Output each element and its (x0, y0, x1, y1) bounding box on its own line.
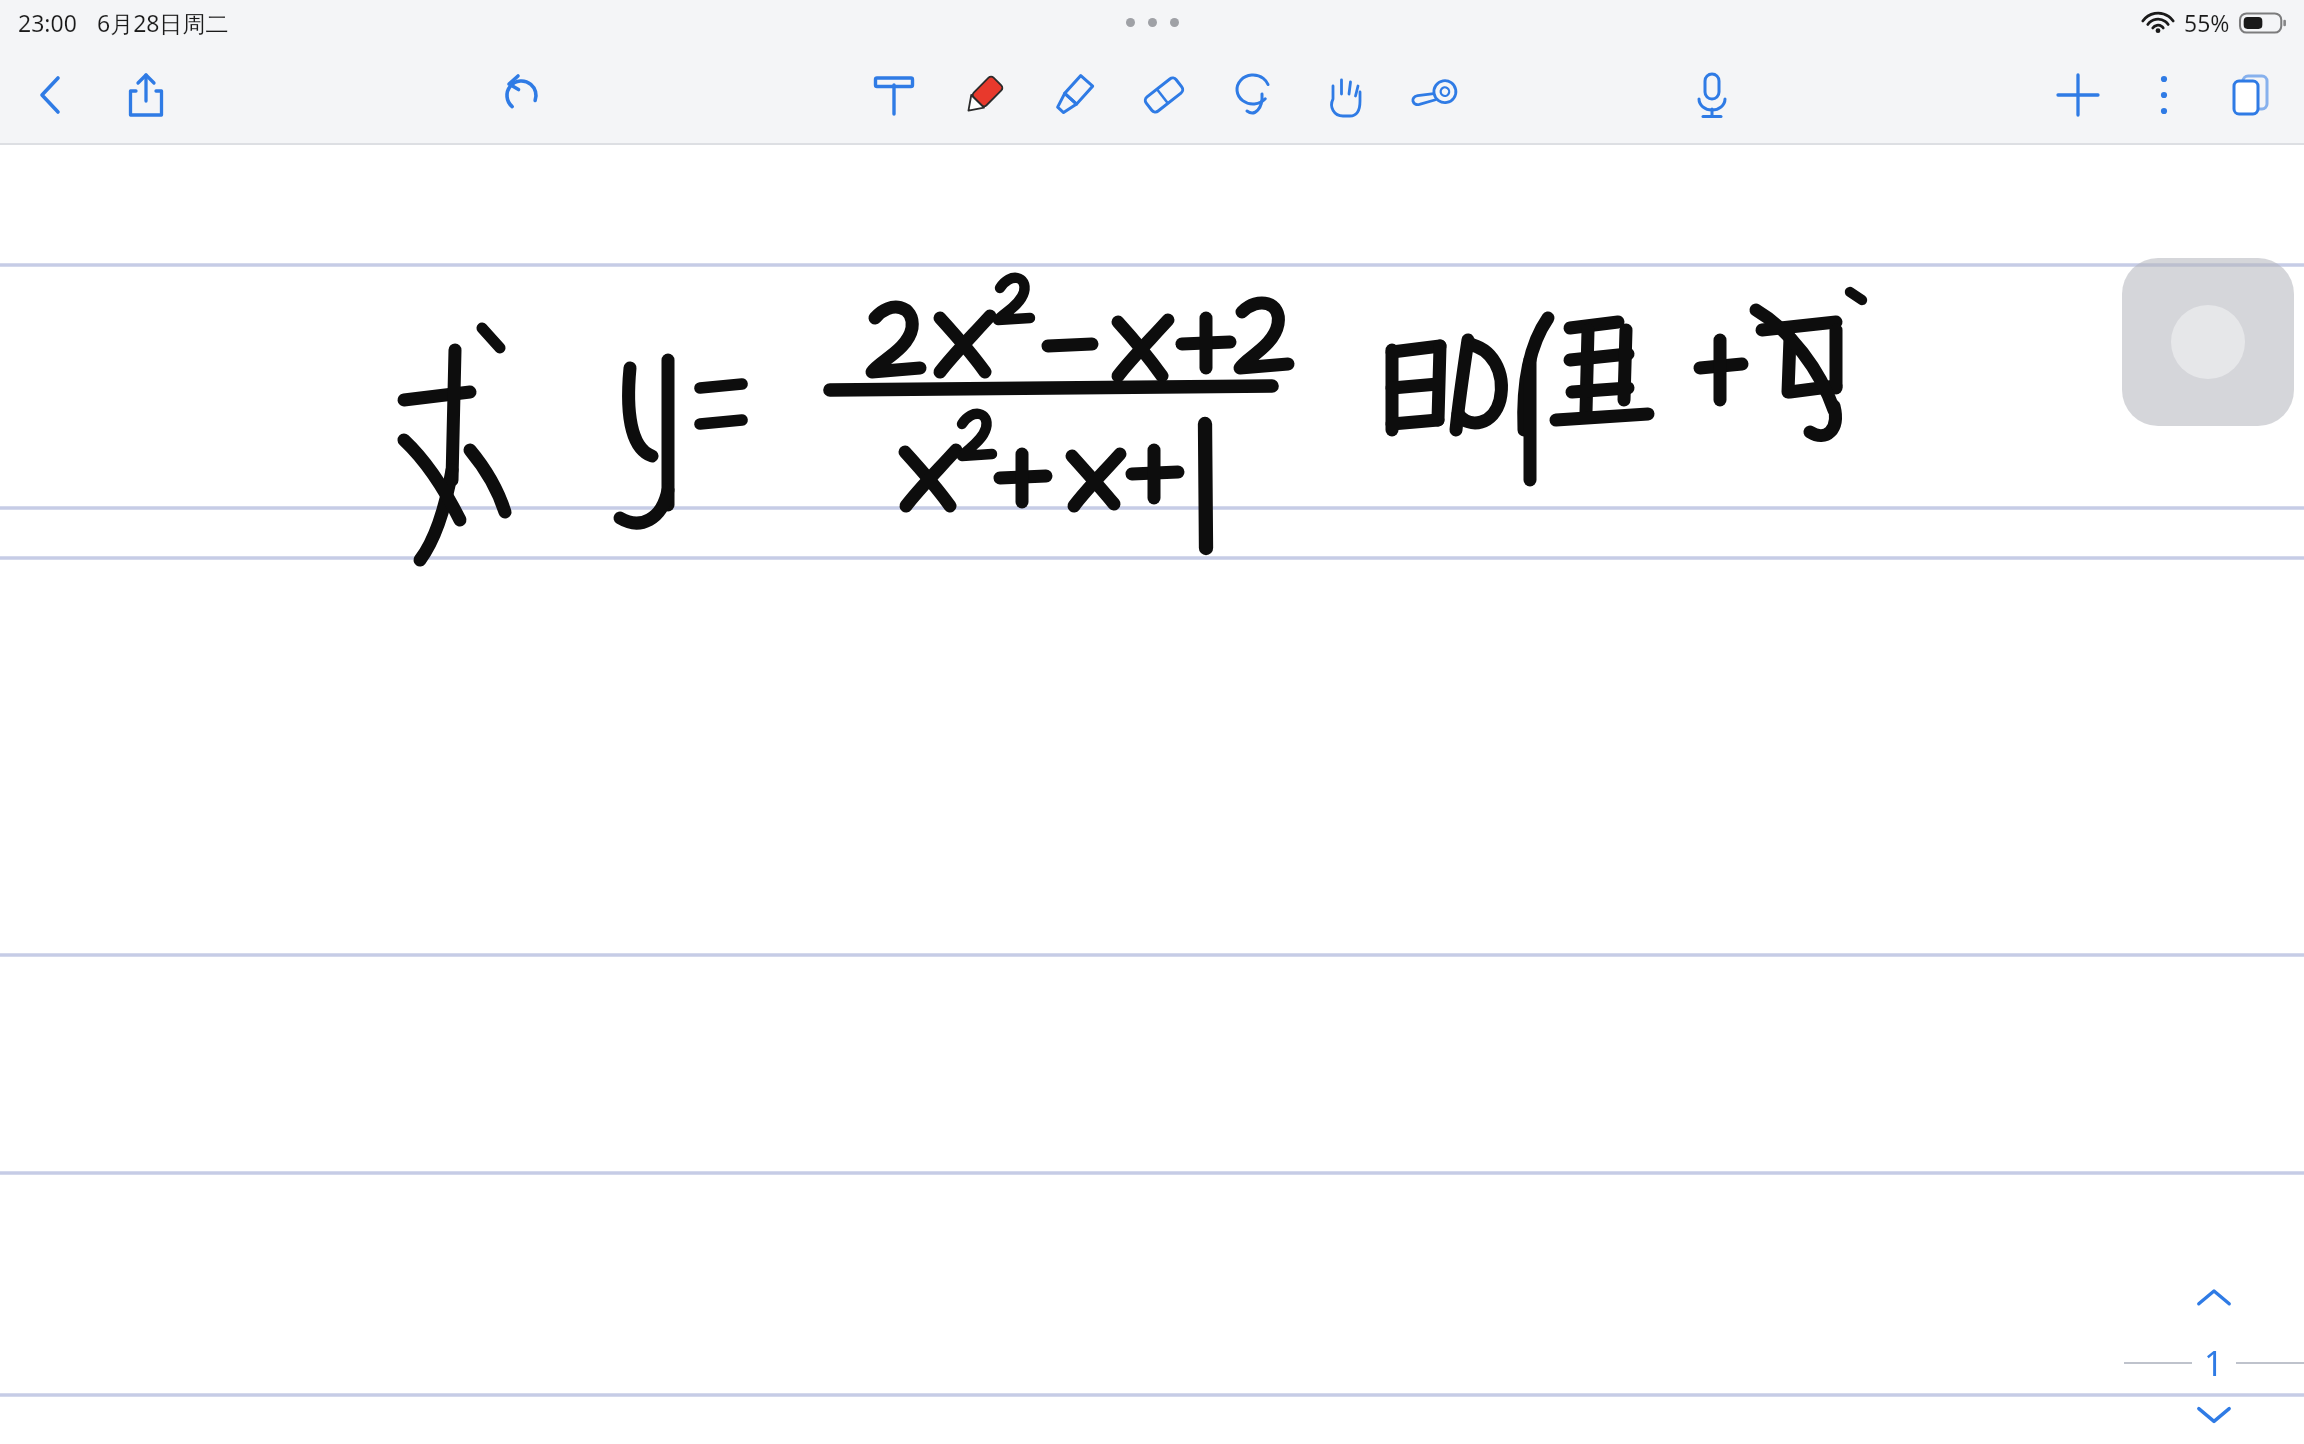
button[interactable]: Undo (486, 59, 558, 131)
button[interactable]: Highlighter (1038, 59, 1110, 131)
staticText: 6月28日周二 (97, 7, 229, 38)
button[interactable]: Eraser (1128, 59, 1200, 131)
button[interactable]: Next page (2179, 1380, 2249, 1444)
button[interactable]: Text tool (858, 59, 930, 131)
button[interactable]: Back (16, 59, 88, 131)
button[interactable]: Hand (1308, 59, 1380, 131)
button[interactable]: Laser pointer (1398, 59, 1470, 131)
button[interactable]: More options (2128, 59, 2200, 131)
button[interactable]: Share (110, 59, 182, 131)
staticText: 1 (2204, 1340, 2224, 1386)
button[interactable]: Assistive touch (2122, 258, 2294, 426)
button[interactable]: Pen (948, 59, 1020, 131)
button[interactable]: Pages (2214, 59, 2286, 131)
staticText: 23:00 (18, 7, 77, 38)
button[interactable]: Previous page (2179, 1264, 2249, 1334)
button[interactable]: Add (2042, 59, 2114, 131)
staticText: 55% (2184, 7, 2230, 38)
button[interactable]: Lasso (1218, 59, 1290, 131)
button[interactable]: Microphone (1676, 59, 1748, 131)
